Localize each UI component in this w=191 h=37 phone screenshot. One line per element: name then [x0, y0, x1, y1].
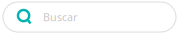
- staticText: Buscar: [43, 10, 77, 24]
- button[interactable]: Buscar: [3, 2, 176, 32]
